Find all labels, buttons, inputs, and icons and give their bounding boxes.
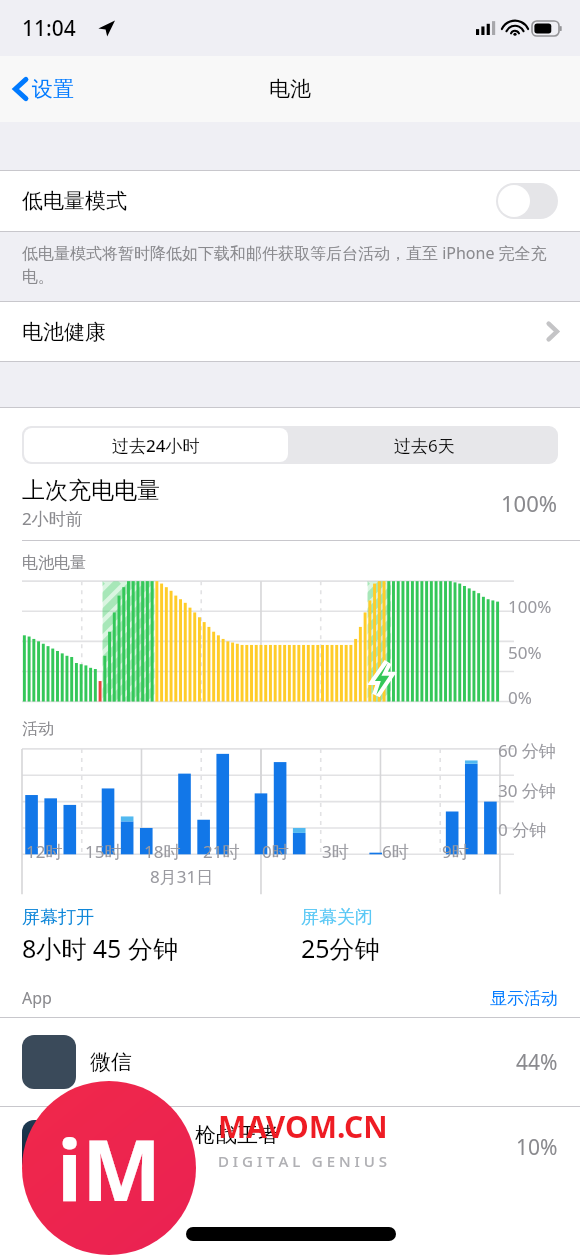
staticText: 上次充电电量 <box>22 476 160 505</box>
staticText: 和平精英：枪战王者 <box>90 1122 279 1148</box>
staticText: 电池电量 <box>22 553 86 573</box>
staticText: 6时 <box>382 840 409 863</box>
staticText: 10% <box>516 1133 558 1162</box>
staticText: 50% <box>508 641 542 664</box>
button[interactable]: 显示活动 <box>490 988 558 1009</box>
button[interactable]: 过去24小时 <box>24 428 288 462</box>
button[interactable]: 微信 <box>0 1018 580 1106</box>
button[interactable]: 和平精英：枪战王者 <box>0 1107 580 1187</box>
staticText: 100% <box>508 595 552 618</box>
staticText: 11:04 <box>22 14 76 43</box>
button[interactable]: Low Power Mode toggle <box>496 183 558 219</box>
staticText: 低电量模式 <box>22 188 127 214</box>
staticText: 微信 <box>90 1049 132 1075</box>
staticText: 屏幕关闭 <box>301 906 373 929</box>
button[interactable]: 电池健康 <box>0 302 580 361</box>
button[interactable]: 过去6天 <box>290 426 558 464</box>
staticText: 0时 <box>262 840 289 863</box>
staticText: 60 分钟 <box>498 739 556 762</box>
staticText: 100% <box>501 488 558 518</box>
button[interactable]: 低电量模式 <box>0 171 580 231</box>
staticText: 音频 <box>90 1151 124 1172</box>
staticText: D I G I T A L G E N I U S <box>218 1151 387 1171</box>
staticText: 屏幕打开 <box>22 906 94 929</box>
staticText: MAVOM.CN <box>218 1106 388 1147</box>
staticText: iM <box>57 1111 162 1225</box>
staticText: 8小时 45 分钟 <box>22 931 178 965</box>
staticText: 15时 <box>85 840 122 863</box>
staticText: 低电量模式将暂时降低如下载和邮件获取等后台活动，直至 iPhone 完全充电。 <box>22 242 558 287</box>
staticText: 电池 <box>269 76 311 102</box>
staticText: 显示活动 <box>490 988 558 1009</box>
staticText: 18时 <box>144 840 181 863</box>
staticText: 8月31日 <box>150 865 214 888</box>
staticText: 过去6天 <box>394 434 455 457</box>
button[interactable]: 设置 <box>0 70 84 108</box>
staticText: App <box>22 987 52 1009</box>
staticText: 30 分钟 <box>498 779 556 802</box>
staticText: 3时 <box>322 840 349 863</box>
staticText: 电池健康 <box>22 319 106 345</box>
staticText: 9时 <box>442 840 469 863</box>
staticText: 活动 <box>22 719 54 739</box>
staticText: 过去24小时 <box>112 434 200 457</box>
staticText: 25分钟 <box>301 931 380 965</box>
staticText: 0% <box>508 686 532 709</box>
staticText: 12时 <box>26 840 63 863</box>
staticText: 2小时前 <box>22 507 83 530</box>
staticText: 0 分钟 <box>498 818 547 841</box>
staticText: 21时 <box>203 840 240 863</box>
staticText: 44% <box>516 1048 558 1077</box>
staticText: 设置 <box>32 76 74 102</box>
